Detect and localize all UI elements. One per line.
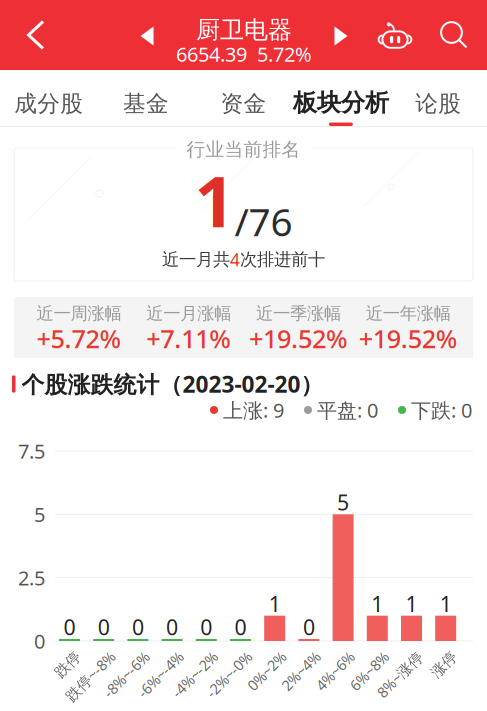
staticText: 1 (269, 589, 281, 618)
staticText: 跌停~-8% (45, 646, 108, 666)
staticText: /76 (234, 195, 292, 247)
staticText: 厨卫电器 (196, 15, 292, 45)
staticText: 8%~涨停 (357, 646, 415, 666)
staticText: +19.52% (359, 322, 458, 355)
staticText: 0 (63, 613, 75, 641)
staticText: 0 (132, 613, 144, 641)
staticText: 6654.39 5.72% (176, 41, 312, 67)
staticText: 近一年涨幅 (366, 303, 451, 324)
staticText: 1 (194, 153, 234, 247)
staticText: 1 (440, 589, 452, 618)
staticText: 5 (34, 501, 45, 528)
button[interactable]: 论股 (390, 70, 487, 126)
button[interactable]: 成分股 (0, 70, 97, 126)
staticText: 2.5 (18, 564, 45, 591)
staticText: 近一周涨幅 (36, 303, 121, 324)
button[interactable]: 资金 (195, 70, 292, 126)
staticText: 近一月共 (162, 249, 230, 270)
staticText: 板块分析 (293, 88, 389, 117)
staticText: 成分股 (14, 90, 83, 117)
staticText: 个股涨跌统计（2023-02-20） (21, 369, 323, 399)
button[interactable]: Back (8, 0, 64, 70)
staticText: 上涨: 9 (223, 397, 284, 423)
staticText: 0 (98, 613, 110, 641)
staticText: 行业当前排名 (186, 138, 300, 161)
staticText: 跌停 (43, 647, 73, 665)
staticText: 4%~6% (299, 646, 347, 666)
button[interactable]: 板块分析 (292, 70, 390, 126)
staticText: 涨停 (420, 647, 450, 665)
staticText: +19.52% (249, 322, 348, 355)
staticText: 0 (34, 628, 45, 654)
staticText: 平盘: 0 (317, 397, 378, 423)
staticText: 0%~2% (231, 646, 279, 666)
staticText: 资金 (220, 90, 266, 117)
staticText: 7.5 (18, 438, 45, 464)
button[interactable]: Previous sector (129, 12, 165, 60)
staticText: 1 (371, 589, 383, 618)
staticText: 6%~8% (333, 646, 381, 666)
staticText: 5 (337, 488, 349, 516)
staticText: +7.11% (146, 322, 231, 355)
staticText: +5.72% (36, 322, 121, 355)
staticText: 0 (234, 613, 246, 641)
staticText: -2%~-0% (186, 646, 244, 666)
staticText: 论股 (415, 90, 461, 117)
staticText: 次排进前十 (240, 249, 325, 270)
staticText: 基金 (123, 90, 169, 117)
button[interactable]: Search (428, 0, 480, 70)
button[interactable]: 基金 (97, 70, 195, 126)
staticText: 0 (303, 613, 315, 641)
button[interactable]: Next sector (323, 12, 359, 60)
staticText: -4%~-2% (152, 646, 210, 666)
staticText: 0 (200, 613, 212, 641)
staticText: 0 (166, 613, 178, 641)
staticText: 下跌: 0 (411, 397, 472, 423)
staticText: -8%~-6% (84, 646, 142, 666)
staticText: 近一月涨幅 (146, 303, 231, 324)
staticText: 4 (230, 248, 240, 271)
staticText: 近一季涨幅 (256, 303, 341, 324)
button[interactable]: AI Assistant (370, 0, 420, 70)
staticText: 2%~4% (265, 646, 313, 666)
staticText: -6%~-4% (118, 646, 176, 666)
staticText: 1 (405, 589, 417, 618)
